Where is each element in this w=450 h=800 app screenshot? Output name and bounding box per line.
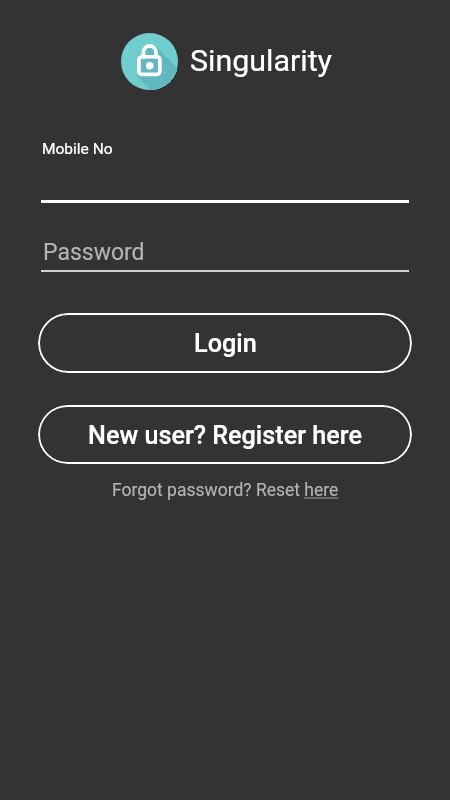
staticText: Singularity (190, 43, 332, 79)
staticText: Login (194, 329, 257, 359)
staticText: Password (43, 239, 145, 266)
button[interactable]: New user? Register here (38, 405, 412, 464)
button[interactable]: Forgot password? Reset here (106, 478, 345, 503)
staticText: Mobile No (42, 140, 113, 158)
staticText: New user? Register here (88, 421, 362, 451)
staticText: Forgot password? Reset here (112, 480, 339, 501)
button[interactable]: Login (38, 313, 412, 373)
